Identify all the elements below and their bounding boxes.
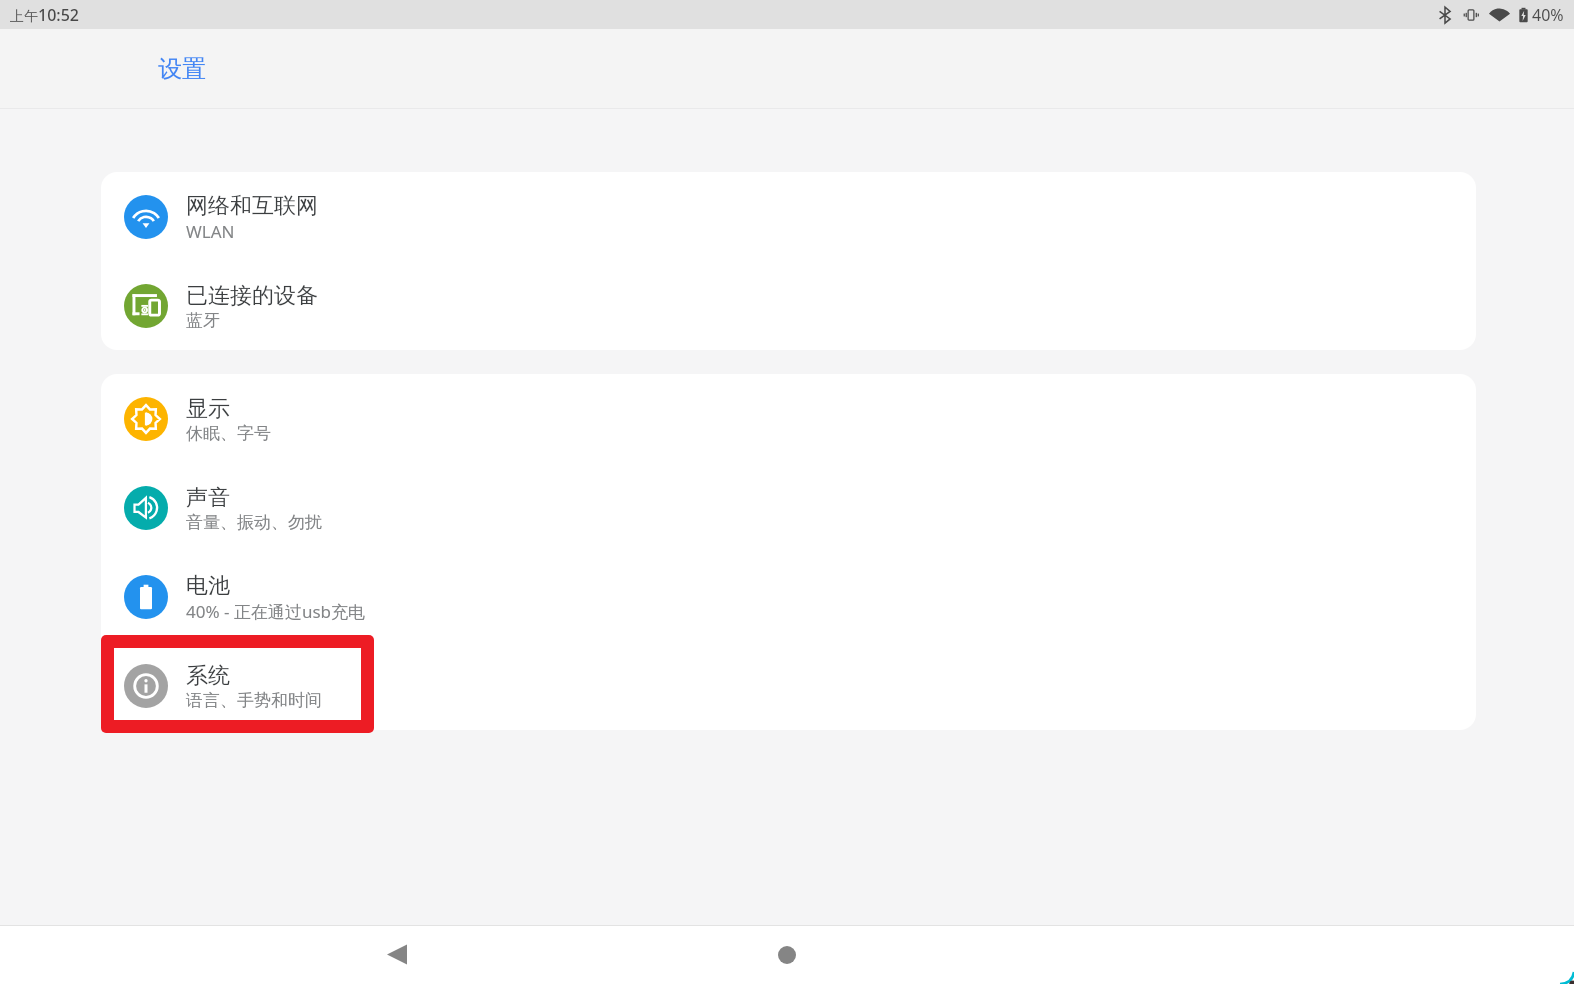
button[interactable]: 网络和互联网 (101, 172, 1476, 261)
staticText: 声音 (186, 484, 230, 512)
staticText: 已连接的设备 (186, 282, 318, 310)
staticText: 网络和互联网 (186, 192, 318, 220)
staticText: 电池 (186, 572, 230, 600)
staticText: 40% - 正在通过usb充电 (186, 600, 365, 623)
staticText: 音量、振动、勿扰 (186, 512, 322, 533)
staticText: 40% (1532, 4, 1564, 26)
staticText: 10:52 (38, 4, 79, 26)
button[interactable]: 声音 (101, 463, 1476, 552)
staticText: 上午 (10, 8, 38, 26)
staticText: 休眠、字号 (186, 423, 271, 444)
button[interactable]: Back (366, 925, 428, 984)
button[interactable]: Home (756, 925, 818, 984)
button[interactable]: 已连接的设备 (101, 261, 1476, 350)
staticText: 设置 (158, 54, 206, 84)
button[interactable]: 系统 (101, 641, 1476, 730)
staticText: WLAN (186, 220, 235, 243)
staticText: 蓝牙 (186, 310, 220, 331)
staticText: 显示 (186, 395, 230, 423)
button[interactable]: 显示 (101, 374, 1476, 463)
staticText: 系统 (186, 662, 230, 690)
staticText: 语言、手势和时间 (186, 690, 322, 711)
button[interactable]: 电池 (101, 552, 1476, 641)
